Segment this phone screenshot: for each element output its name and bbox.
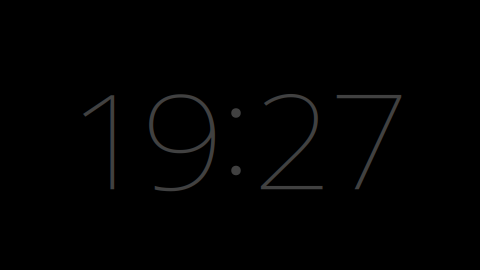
staticText: 2 — [255, 48, 330, 228]
staticText: 1 — [71, 48, 146, 228]
staticText: 7 — [331, 48, 406, 228]
button[interactable]: 19:27 — [0, 0, 480, 270]
staticText: 9 — [145, 48, 220, 228]
